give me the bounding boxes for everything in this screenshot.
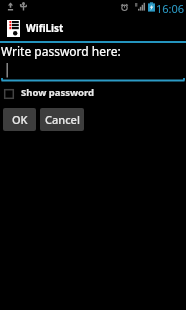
staticText: WifiList (26, 21, 64, 35)
staticText: Write password here: (1, 43, 121, 59)
staticText: OK (12, 112, 28, 127)
button[interactable]: App icon (0, 14, 186, 41)
button[interactable]: Cancel (40, 108, 84, 131)
staticText: 16:06 (156, 1, 185, 15)
button[interactable]: OK (3, 108, 36, 131)
staticText: Show password (21, 86, 95, 99)
button[interactable]: Password field (0, 61, 186, 83)
staticText: Cancel (45, 112, 80, 127)
other: App icon (7, 20, 20, 37)
button[interactable]: Show password (2, 85, 95, 103)
